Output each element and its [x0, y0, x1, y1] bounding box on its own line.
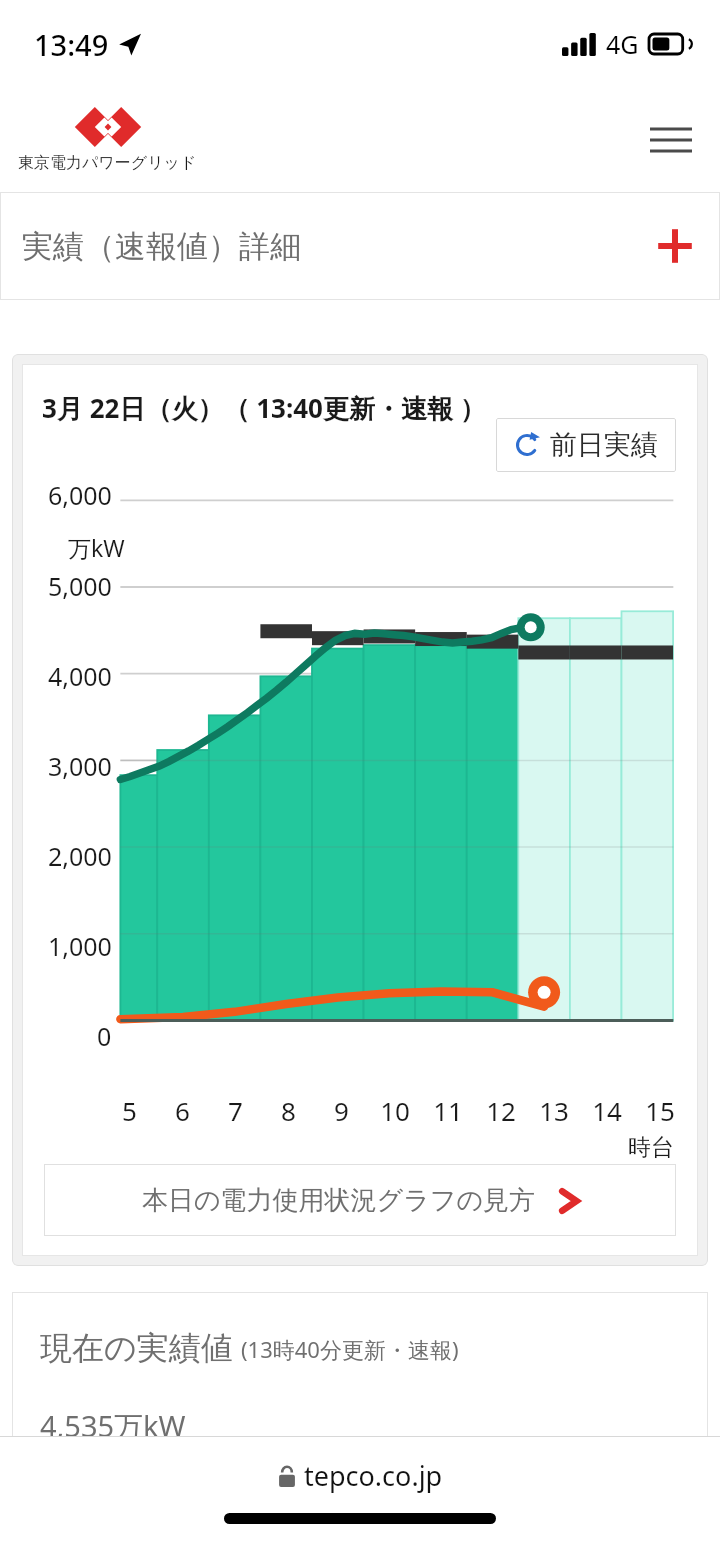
staticText: 万kW	[68, 532, 125, 563]
staticText: 3,000	[48, 749, 112, 783]
staticText: 13	[539, 1093, 569, 1128]
staticText: 2,000	[48, 839, 112, 873]
staticText: 11	[433, 1093, 463, 1128]
staticText: 15	[645, 1093, 675, 1128]
staticText: 東京電力パワーグリッド	[18, 153, 197, 173]
staticText: 12	[486, 1093, 516, 1128]
staticText: 13:49	[34, 25, 109, 64]
staticText: 5	[122, 1093, 137, 1128]
other: Expand	[654, 225, 696, 267]
staticText: 6,000	[48, 478, 112, 512]
staticText: 9	[334, 1093, 349, 1128]
staticText: 3月 22日（火）（ 13:40更新・速報 ）	[42, 390, 486, 426]
button[interactable]: 本日の電力使用状況グラフの見方	[44, 1164, 676, 1236]
button[interactable]: 前日実績	[496, 418, 676, 472]
staticText: 4,000	[48, 659, 112, 693]
staticText: 本日の電力使用状況グラフの見方	[142, 1184, 536, 1217]
staticText: 5,000	[48, 569, 112, 603]
staticText: 10	[380, 1093, 410, 1128]
staticText: 前日実績	[550, 428, 658, 462]
staticText: 7	[228, 1093, 243, 1128]
staticText: 8	[281, 1093, 296, 1128]
staticText: 0	[97, 1019, 112, 1053]
staticText: 6	[175, 1093, 190, 1128]
staticText: 実績（速報値）詳細	[22, 227, 301, 266]
staticText: 1,000	[48, 929, 112, 963]
staticText: tepco.co.jp	[304, 1457, 443, 1494]
staticText: 4,535万kW	[40, 1406, 186, 1446]
button[interactable]: Menu	[642, 111, 700, 169]
staticText: 4G	[606, 27, 639, 61]
staticText: 14	[592, 1093, 622, 1128]
staticText: 時台	[628, 1133, 674, 1162]
button[interactable]: 実績（速報値）詳細	[0, 192, 720, 300]
staticText: (13時40分更新・速報)	[241, 1334, 459, 1364]
staticText: 現在の実績値	[40, 1328, 233, 1368]
